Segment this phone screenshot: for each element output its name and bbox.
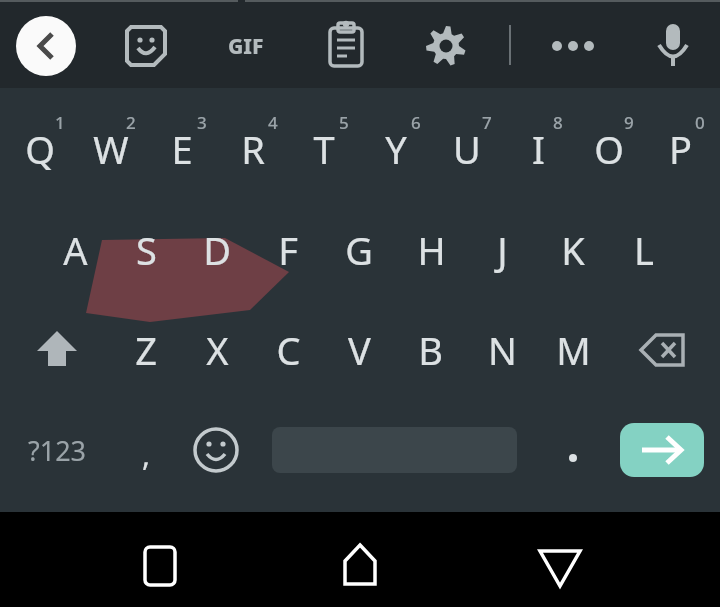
staticText: O: [594, 123, 624, 175]
button[interactable]: W: [76, 116, 146, 182]
staticText: 5: [339, 111, 349, 134]
staticText: 4: [268, 111, 278, 134]
button[interactable]: Backspace: [633, 320, 693, 380]
button[interactable]: U: [432, 116, 502, 182]
button[interactable]: D: [182, 217, 252, 283]
staticText: N: [488, 324, 517, 376]
button[interactable]: G: [324, 217, 394, 283]
staticText: Q: [25, 123, 55, 175]
button[interactable]: L: [609, 217, 679, 283]
button[interactable]: P: [645, 116, 715, 182]
staticText: I: [532, 123, 545, 175]
staticText: C: [276, 324, 301, 376]
staticText: 0: [695, 111, 705, 134]
staticText: 3: [197, 111, 207, 134]
button[interactable]: Recents: [130, 536, 190, 596]
staticText: D: [203, 224, 231, 276]
button[interactable]: M: [538, 317, 608, 383]
button[interactable]: Back: [530, 536, 590, 596]
staticText: 7: [482, 111, 492, 134]
button[interactable]: Enter: [620, 423, 704, 477]
staticText: J: [497, 224, 508, 276]
staticText: S: [136, 224, 157, 276]
button[interactable]: S: [111, 217, 181, 283]
button[interactable]: Q: [5, 116, 75, 182]
staticText: U: [453, 123, 481, 175]
button[interactable]: Shift: [27, 320, 87, 380]
button[interactable]: F: [253, 217, 323, 283]
button[interactable]: Home: [330, 536, 390, 596]
staticText: B: [418, 324, 443, 376]
button[interactable]: Voice input: [645, 18, 701, 74]
staticText: 1: [55, 111, 65, 134]
button[interactable]: R: [218, 116, 288, 182]
staticText: 9: [624, 111, 634, 134]
button[interactable]: V: [324, 317, 394, 383]
staticText: Y: [385, 123, 407, 175]
button[interactable]: B: [395, 317, 465, 383]
staticText: A: [63, 224, 88, 276]
button[interactable]: E: [147, 116, 217, 182]
button[interactable]: Z: [111, 317, 181, 383]
staticText: F: [278, 224, 298, 276]
staticText: G: [345, 224, 373, 276]
button[interactable]: ?123: [14, 422, 100, 478]
button[interactable]: O: [574, 116, 644, 182]
staticText: GIF: [228, 32, 264, 61]
staticText: M: [556, 324, 591, 376]
staticText: 6: [411, 111, 421, 134]
button[interactable]: X: [182, 317, 252, 383]
button[interactable]: GIF: [218, 18, 274, 74]
button[interactable]: A: [40, 217, 110, 283]
staticText: ?123: [28, 432, 87, 469]
button[interactable]: T: [289, 116, 359, 182]
button[interactable]: Y: [361, 116, 431, 182]
staticText: R: [241, 123, 265, 175]
staticText: E: [171, 123, 193, 175]
button[interactable]: More options: [545, 18, 601, 74]
button[interactable]: K: [538, 217, 608, 283]
staticText: V: [348, 324, 371, 376]
button[interactable]: ,: [118, 422, 174, 478]
button[interactable]: J: [467, 217, 537, 283]
staticText: 2: [126, 111, 136, 134]
button[interactable]: Stickers: [118, 18, 174, 74]
button[interactable]: C: [253, 317, 323, 383]
button[interactable]: I: [503, 116, 573, 182]
button[interactable]: Back: [16, 16, 76, 76]
button[interactable]: H: [396, 217, 466, 283]
staticText: 8: [553, 111, 563, 134]
staticText: K: [561, 224, 585, 276]
staticText: ,: [142, 434, 151, 475]
staticText: P: [669, 123, 692, 175]
staticText: X: [206, 324, 229, 376]
staticText: Z: [135, 324, 157, 376]
staticText: L: [634, 224, 654, 276]
staticText: H: [417, 224, 446, 276]
button[interactable]: [545, 422, 601, 478]
button[interactable]: Clipboard: [318, 18, 374, 74]
button[interactable]: Settings: [418, 18, 474, 74]
button[interactable]: N: [467, 317, 537, 383]
staticText: T: [313, 123, 335, 175]
button[interactable]: Emoji: [188, 422, 244, 478]
staticText: W: [93, 123, 129, 175]
